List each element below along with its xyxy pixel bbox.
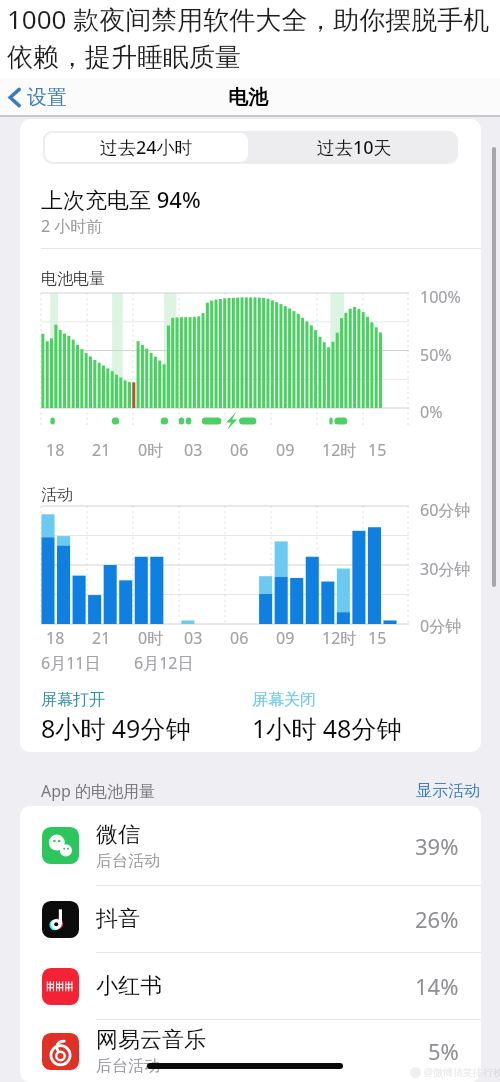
- staticText: 1000 款夜间禁用软件大全，助你摆脱手机 依赖，提升睡眠质量: [7, 1, 490, 73]
- staticText: 活动: [41, 485, 73, 505]
- staticText: 5%: [428, 1036, 459, 1066]
- staticText: 30分钟: [420, 558, 471, 580]
- staticText: 60分钟: [420, 499, 471, 521]
- staticText: 15: [368, 627, 387, 649]
- staticText: 21: [92, 439, 111, 461]
- staticText: 上次充电至 94%: [41, 184, 201, 214]
- staticText: 0时: [138, 439, 164, 461]
- staticText: 抖音: [96, 905, 140, 933]
- staticText: 100%: [420, 286, 461, 308]
- staticText: 屏幕打开: [41, 690, 105, 710]
- staticText: 设置: [27, 85, 67, 110]
- staticText: 6月12日: [134, 652, 194, 674]
- staticText: 0时: [138, 627, 164, 649]
- staticText: 6月11日: [41, 652, 101, 674]
- staticText: App 的电池用量: [41, 780, 156, 802]
- staticText: 06: [230, 627, 249, 649]
- button[interactable]: 网易云音乐: [20, 1020, 481, 1082]
- staticText: 1小时 48分钟: [252, 711, 402, 745]
- staticText: 过去10天: [317, 135, 392, 160]
- staticText: 2 小时前: [41, 215, 103, 237]
- staticText: 26%: [415, 904, 459, 934]
- staticText: 09: [276, 627, 295, 649]
- staticText: 微信: [96, 821, 140, 849]
- button[interactable]: 微信: [20, 806, 481, 885]
- button[interactable]: 小红书: [20, 953, 481, 1019]
- staticText: 14%: [415, 971, 459, 1001]
- staticText: 12时: [322, 627, 357, 649]
- staticText: 18: [46, 627, 65, 649]
- button[interactable]: 过去24小时: [45, 133, 248, 162]
- staticText: 06: [230, 439, 249, 461]
- staticText: 0分钟: [420, 615, 462, 637]
- staticText: 39%: [415, 831, 459, 861]
- button[interactable]: 返回设置: [4, 80, 71, 115]
- button[interactable]: 抖音: [20, 886, 481, 952]
- staticText: 0%: [420, 401, 443, 423]
- staticText: 电池: [228, 85, 268, 110]
- button[interactable]: 过去10天: [250, 131, 458, 164]
- staticText: 过去24小时: [100, 135, 193, 160]
- staticText: 小红书: [96, 972, 162, 1000]
- staticText: @微博搞笑排行榜: [424, 1065, 500, 1079]
- staticText: 网易云音乐: [96, 1026, 206, 1054]
- staticText: 21: [92, 627, 111, 649]
- button[interactable]: 显示活动: [416, 781, 480, 801]
- staticText: 09: [276, 439, 295, 461]
- staticText: 后台活动: [96, 1056, 160, 1076]
- staticText: 15: [368, 439, 387, 461]
- staticText: 18: [46, 439, 65, 461]
- staticText: 后台活动: [96, 851, 160, 871]
- staticText: 8小时 49分钟: [41, 711, 191, 745]
- staticText: 显示活动: [416, 781, 480, 801]
- staticText: 电池电量: [41, 269, 105, 289]
- staticText: 03: [184, 627, 203, 649]
- staticText: 03: [184, 439, 203, 461]
- staticText: 12时: [322, 439, 357, 461]
- staticText: 屏幕关闭: [252, 690, 316, 710]
- other: 返回设置: [8, 87, 21, 108]
- staticText: 50%: [420, 344, 452, 366]
